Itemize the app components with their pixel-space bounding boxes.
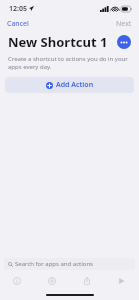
staticText: Next: [116, 19, 132, 28]
button[interactable]: Add Action: [5, 77, 134, 93]
button[interactable]: Play: [104, 274, 139, 288]
button[interactable]: Next: [109, 17, 139, 30]
staticText: Cancel: [7, 19, 29, 28]
staticText: 12:05: [9, 4, 27, 14]
button[interactable]: Settings: [34, 274, 69, 288]
staticText: Search for apps and actions: [15, 260, 93, 268]
staticText: New Shortcut 1: [8, 33, 117, 51]
button[interactable]: Share: [69, 274, 104, 288]
button[interactable]: Search for apps and actions: [4, 258, 135, 270]
button[interactable]: Info: [0, 274, 34, 288]
staticText: Add Action: [56, 80, 94, 90]
button[interactable]: More options: [117, 35, 131, 49]
button[interactable]: Cancel: [0, 17, 36, 30]
staticText: Create a shortcut to actions you do in y…: [8, 55, 129, 71]
